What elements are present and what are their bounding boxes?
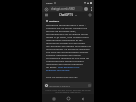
button[interactable]: Recents: [50, 95, 57, 102]
staticText: ChatGPT: [49, 19, 60, 22]
staticText: aide.exemple.com: [58, 65, 80, 68]
staticText: souvent l'attention des autres membres.: [46, 53, 91, 56]
staticText: 10:47: [46, 1, 53, 4]
staticText: communication attirent souvent: [46, 59, 84, 62]
staticText: Sa présence régulière et son style de: [46, 56, 89, 59]
staticText: du Revel :: [46, 65, 58, 68]
staticText: principalement sur le célèbre forum: [46, 32, 89, 35]
staticText: Message ChatGPT: [49, 84, 71, 87]
staticText: Pour en savoir plus sur ces contribution…: [46, 75, 91, 78]
staticText: Recherche terminée dans 4 sites :: [46, 23, 86, 26]
staticText: Wikidom est un forum créateur qui d'un l…: [46, 26, 91, 29]
staticText: ChatGPT peut faire des erreurs. Envisage…: [44, 89, 92, 93]
button[interactable]: ChatGPT 5: [58, 13, 78, 17]
button[interactable]: chatgpt.com/c/68f2: [49, 6, 83, 11]
button[interactable]: Open sidebar: [43, 12, 49, 18]
button[interactable]: Home: [65, 95, 72, 102]
staticText: de l'actualité aux débats plus légers et: [46, 44, 91, 47]
staticText: discussions variées sur des sujets allan…: [46, 41, 91, 44]
staticText: ChatGPT 5: [59, 13, 74, 17]
button[interactable]: Account: [83, 6, 89, 12]
staticText: exemple.com/guide: [46, 68, 70, 71]
staticText: humoristiques. Sa présence régulière et: [46, 47, 91, 50]
staticText: l'attention des autres membres.: [46, 62, 84, 65]
button[interactable]: Site information: [43, 6, 49, 12]
button[interactable]: Back: [79, 95, 86, 102]
staticText: Média W JR salon, l'util contenu pour se…: [46, 35, 91, 38]
button[interactable]: New chat: [87, 12, 93, 18]
button[interactable]: Message ChatGPT: [44, 82, 92, 88]
button[interactable]: More options: [89, 7, 93, 11]
staticText: son style de communication attirent: [46, 50, 89, 53]
staticText: interventions fréquentes et ses: [46, 38, 83, 41]
staticText: chatgpt.com/c/68f2: [51, 7, 75, 11]
staticText: forums de procédés avec,: [46, 29, 77, 32]
